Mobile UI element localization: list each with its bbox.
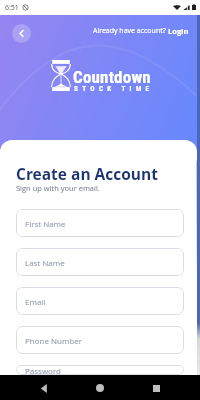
button[interactable]: Email (16, 287, 184, 315)
staticText: Login (168, 26, 189, 36)
staticText: First Name (25, 218, 66, 229)
button[interactable]: Phone Number (16, 326, 184, 354)
staticText: Email (25, 296, 46, 307)
button[interactable]: Recents (144, 376, 168, 400)
button[interactable]: Password (16, 365, 184, 375)
button[interactable]: Back (32, 376, 56, 400)
staticText: Already have account? (93, 26, 168, 36)
staticText: Phone Number (25, 335, 83, 346)
staticText: 6:51 (5, 3, 19, 13)
staticText: Sign up with your email. (16, 183, 100, 193)
staticText: Countdown (73, 67, 151, 87)
button[interactable]: Back (12, 24, 31, 43)
staticText: Password (25, 365, 61, 375)
staticText: STOCK TIME (74, 85, 154, 93)
staticText: Create an Account (16, 163, 158, 184)
button[interactable]: Already have account? (92, 23, 190, 39)
button[interactable]: Home (88, 376, 112, 400)
staticText: Last Name (25, 257, 65, 268)
button[interactable]: Last Name (16, 248, 184, 276)
button[interactable]: First Name (16, 209, 184, 237)
